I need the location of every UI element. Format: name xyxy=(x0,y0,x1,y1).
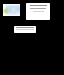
button[interactable] xyxy=(3,4,20,16)
button[interactable] xyxy=(14,26,36,33)
button[interactable] xyxy=(26,3,50,20)
